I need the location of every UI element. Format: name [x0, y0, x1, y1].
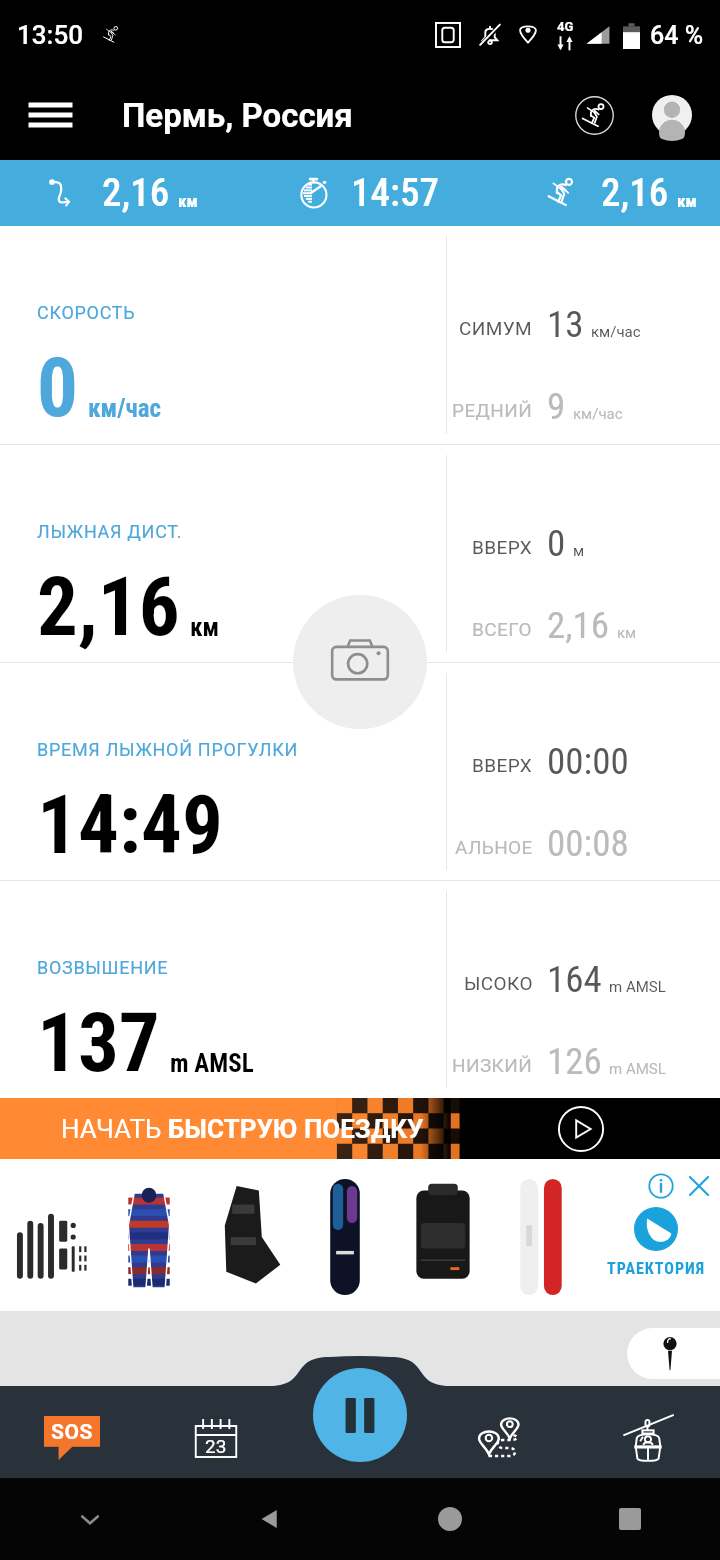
staticText: 13 [547, 303, 584, 346]
staticText: 2,16 [102, 170, 170, 216]
button[interactable]: 2,16 [0, 160, 240, 226]
staticText: 00:08 [547, 822, 629, 865]
staticText: 0 [37, 341, 78, 436]
staticText: 2,16 [37, 560, 180, 655]
staticText: 2,16 [547, 604, 610, 647]
staticText: км [617, 624, 637, 642]
staticText: км/час [591, 323, 641, 341]
staticText: км [677, 191, 697, 211]
staticText: м [573, 542, 585, 560]
button[interactable]: SOS [0, 1398, 144, 1478]
staticText: 13:50 [17, 20, 83, 50]
button[interactable]: Open navigation menu [22, 87, 78, 143]
button[interactable]: ВОЗВЫШЕНИЕ [0, 881, 720, 1098]
button[interactable]: НАЧАТЬ [0, 1098, 720, 1159]
staticText: СКОРОСТЬ [37, 302, 136, 323]
staticText: 14:57 [351, 170, 439, 216]
button[interactable]: ЛЫЖНАЯ ДИСТ. [0, 445, 720, 662]
button[interactable]: Map marker [627, 1328, 720, 1379]
button[interactable] [396, 1165, 490, 1309]
staticText: 64 % [650, 21, 704, 50]
other: Close ad [686, 1173, 712, 1199]
staticText: 00:00 [547, 740, 629, 783]
button[interactable]: Back [180, 1478, 360, 1560]
staticText: m AMSL [609, 978, 666, 996]
staticText: 164 [547, 958, 602, 1001]
button[interactable]: Recent apps [540, 1478, 720, 1560]
button[interactable]: Ad info [592, 1165, 720, 1309]
staticText: ВРЕМЯ ЛЫЖНОЙ ПРОГУЛКИ [37, 739, 299, 760]
staticText: ЫСОКО [464, 972, 533, 994]
staticText: 23 [205, 1435, 227, 1457]
staticText: 137 [37, 996, 160, 1091]
staticText: m AMSL [609, 1060, 666, 1078]
staticText: 0 [547, 522, 566, 565]
staticText: 2,16 [601, 170, 669, 216]
staticText: ВОЗВЫШЕНИЕ [37, 957, 169, 978]
button[interactable]: Home [360, 1478, 540, 1560]
other: Ad info [648, 1173, 674, 1199]
staticText: км/час [573, 405, 623, 423]
staticText: 126 [547, 1040, 602, 1083]
staticText: 4G [557, 19, 574, 34]
button[interactable]: Take photo [293, 595, 427, 729]
button[interactable] [298, 1165, 392, 1309]
button[interactable] [102, 1165, 196, 1309]
button[interactable]: Calendar [144, 1398, 288, 1478]
button[interactable] [494, 1165, 588, 1309]
staticText: ВВЕРХ [472, 754, 533, 776]
staticText: СИМУМ [459, 317, 533, 339]
button[interactable] [200, 1165, 294, 1309]
staticText: км/час [88, 394, 162, 423]
staticText: m AMSL [170, 1049, 254, 1078]
button[interactable]: Profile [646, 89, 698, 141]
staticText: 14:49 [37, 778, 223, 873]
staticText: ЛЫЖНАЯ ДИСТ. [37, 521, 183, 542]
button[interactable]: 14:57 [240, 160, 480, 226]
staticText: БЫСТРУЮ ПОЕЗДКУ [168, 1114, 424, 1144]
staticText: Пермь, Россия [122, 96, 353, 135]
staticText: SOS [51, 1420, 93, 1445]
staticText: ВВЕРХ [472, 536, 533, 558]
button[interactable] [4, 1165, 98, 1309]
button[interactable]: Activity type [566, 87, 622, 143]
staticText: АЛЬНОЕ [455, 836, 533, 858]
staticText: ТРАЕКТОРИЯ [607, 1259, 706, 1278]
staticText: РЕДНИЙ [452, 399, 533, 421]
staticText: км [178, 191, 198, 211]
staticText: ВСЕГО [472, 618, 533, 640]
button[interactable]: Lifts [576, 1398, 720, 1478]
button[interactable]: СКОРОСТЬ [0, 226, 720, 444]
staticText: км [190, 613, 220, 642]
button[interactable]: ВРЕМЯ ЛЫЖНОЙ ПРОГУЛКИ [0, 663, 720, 880]
button[interactable]: Hide keyboard [0, 1478, 180, 1560]
button[interactable]: Pause tracking [313, 1368, 407, 1462]
staticText: 9 [547, 385, 566, 428]
button[interactable]: Route [432, 1398, 576, 1478]
staticText: НИЗКИЙ [452, 1054, 533, 1076]
staticText: НАЧАТЬ [61, 1114, 168, 1144]
button[interactable]: 2,16 [480, 160, 720, 226]
